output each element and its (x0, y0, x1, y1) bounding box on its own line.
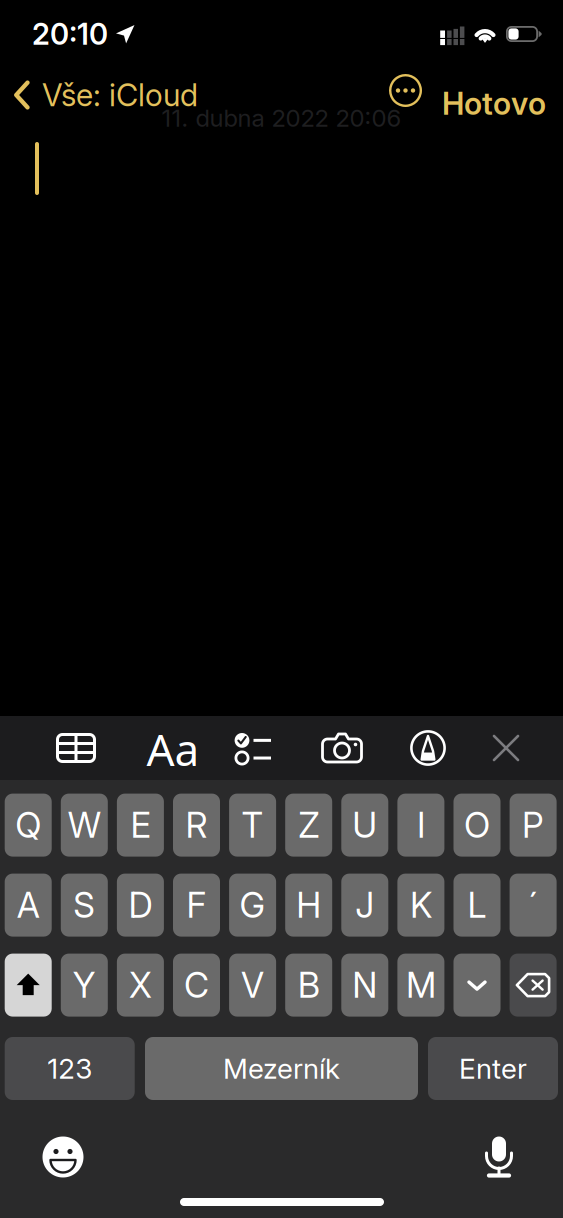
button[interactable]: B (285, 954, 332, 1017)
staticText: 123 (47, 1052, 92, 1085)
staticText: Enter (459, 1052, 527, 1085)
button[interactable]: Vše: iCloud (13, 75, 198, 115)
button[interactable]: U (341, 794, 388, 857)
staticText: J (355, 884, 374, 926)
staticText: T (242, 804, 264, 846)
button[interactable]: S (61, 874, 108, 937)
button[interactable]: O (453, 794, 500, 857)
staticText: H (296, 884, 321, 926)
button[interactable]: R (173, 794, 220, 857)
staticText: B (298, 964, 320, 1006)
staticText: E (130, 804, 150, 846)
button[interactable]: T (229, 794, 276, 857)
button[interactable]: M (397, 954, 444, 1017)
staticText: Hotovo (442, 85, 546, 122)
button[interactable]: K (397, 874, 444, 937)
button[interactable]: Table (56, 733, 96, 763)
button[interactable]: Mezerník (145, 1037, 418, 1100)
staticText: Mezerník (223, 1052, 340, 1085)
button[interactable]: Emoji keyboard (42, 1136, 84, 1178)
staticText: Z (298, 804, 319, 846)
button[interactable]: Dictate (483, 1135, 515, 1179)
button[interactable]: More options (389, 74, 422, 107)
button[interactable]: Markup (410, 730, 446, 766)
staticText: Q (15, 804, 41, 846)
button[interactable] (510, 954, 557, 1017)
staticText: X (129, 964, 152, 1006)
button[interactable]: P (510, 794, 557, 857)
staticText: 20:10 (32, 16, 108, 52)
button[interactable]: V (229, 954, 276, 1017)
staticText: P (522, 804, 544, 846)
staticText: V (241, 964, 264, 1006)
button[interactable]: C (173, 954, 220, 1017)
button[interactable]: F (173, 874, 220, 937)
button[interactable]: H (285, 874, 332, 937)
button[interactable]: Z (285, 794, 332, 857)
button[interactable]: L (453, 874, 500, 937)
staticText: G (240, 884, 266, 926)
button[interactable]: E (117, 794, 164, 857)
button[interactable]: D (117, 874, 164, 937)
button[interactable]: Checklist (234, 733, 272, 765)
staticText: F (186, 884, 206, 926)
staticText: M (406, 964, 436, 1006)
staticText: C (184, 964, 209, 1006)
button[interactable]: I (397, 794, 444, 857)
button[interactable] (453, 954, 500, 1017)
button[interactable]: W (61, 794, 108, 857)
button[interactable]: Y (61, 954, 108, 1017)
staticText: 11. dubna 2022 20:06 (161, 103, 401, 132)
staticText: Vše: iCloud (42, 76, 198, 113)
staticText: D (128, 884, 152, 926)
staticText: W (68, 804, 101, 846)
button[interactable]: Q (5, 794, 52, 857)
button[interactable]: Aa (143, 731, 203, 767)
button[interactable]: Close (492, 734, 520, 762)
staticText: N (352, 964, 377, 1006)
staticText: L (467, 884, 486, 926)
staticText: I (417, 804, 425, 846)
staticText: Y (73, 964, 96, 1006)
button[interactable]: 123 (5, 1037, 135, 1100)
button[interactable]: Camera (321, 732, 363, 764)
button[interactable] (5, 954, 52, 1017)
button[interactable]: ´ (510, 874, 557, 937)
button[interactable]: J (341, 874, 388, 937)
staticText: O (464, 804, 490, 846)
staticText: A (17, 884, 40, 926)
button[interactable]: N (341, 954, 388, 1017)
button[interactable]: X (117, 954, 164, 1017)
button[interactable]: G (229, 874, 276, 937)
button[interactable]: Hotovo (442, 77, 546, 130)
staticText: Aa (146, 720, 199, 778)
staticText: ´ (529, 884, 538, 926)
button[interactable]: Enter (428, 1037, 558, 1100)
staticText: K (410, 884, 432, 926)
staticText: U (352, 804, 377, 846)
staticText: S (73, 884, 95, 926)
staticText: R (185, 804, 207, 846)
button[interactable]: A (5, 874, 52, 937)
